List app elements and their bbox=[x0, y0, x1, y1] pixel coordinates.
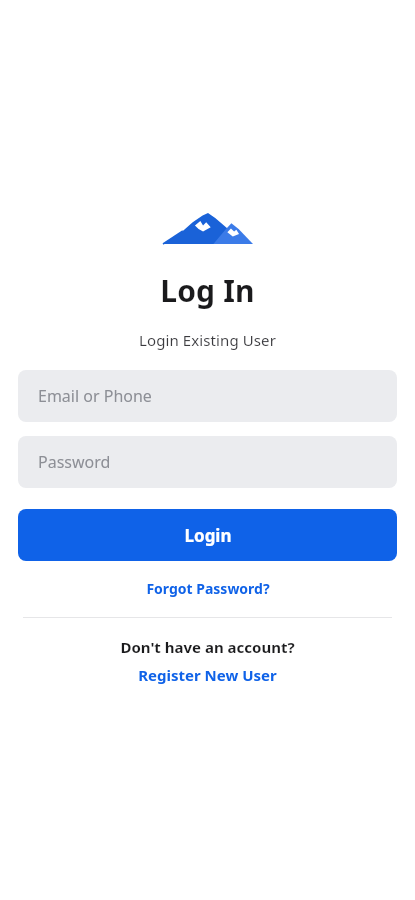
staticText: Password bbox=[38, 451, 111, 473]
staticText: Login bbox=[184, 524, 232, 547]
button[interactable]: Password bbox=[18, 436, 397, 488]
staticText: Log In bbox=[160, 270, 255, 311]
staticText: Register New User bbox=[138, 665, 277, 685]
button[interactable]: Register New User bbox=[128, 663, 287, 687]
staticText: Login Existing User bbox=[139, 330, 276, 350]
button[interactable]: Login bbox=[18, 509, 397, 561]
staticText: Forgot Password? bbox=[146, 579, 270, 598]
staticText: Email or Phone bbox=[38, 385, 152, 407]
other: App logo bbox=[163, 213, 253, 244]
staticText: Don't have an account? bbox=[120, 637, 295, 657]
button[interactable]: Email or Phone bbox=[18, 370, 397, 422]
button[interactable]: Forgot Password? bbox=[136, 575, 280, 602]
